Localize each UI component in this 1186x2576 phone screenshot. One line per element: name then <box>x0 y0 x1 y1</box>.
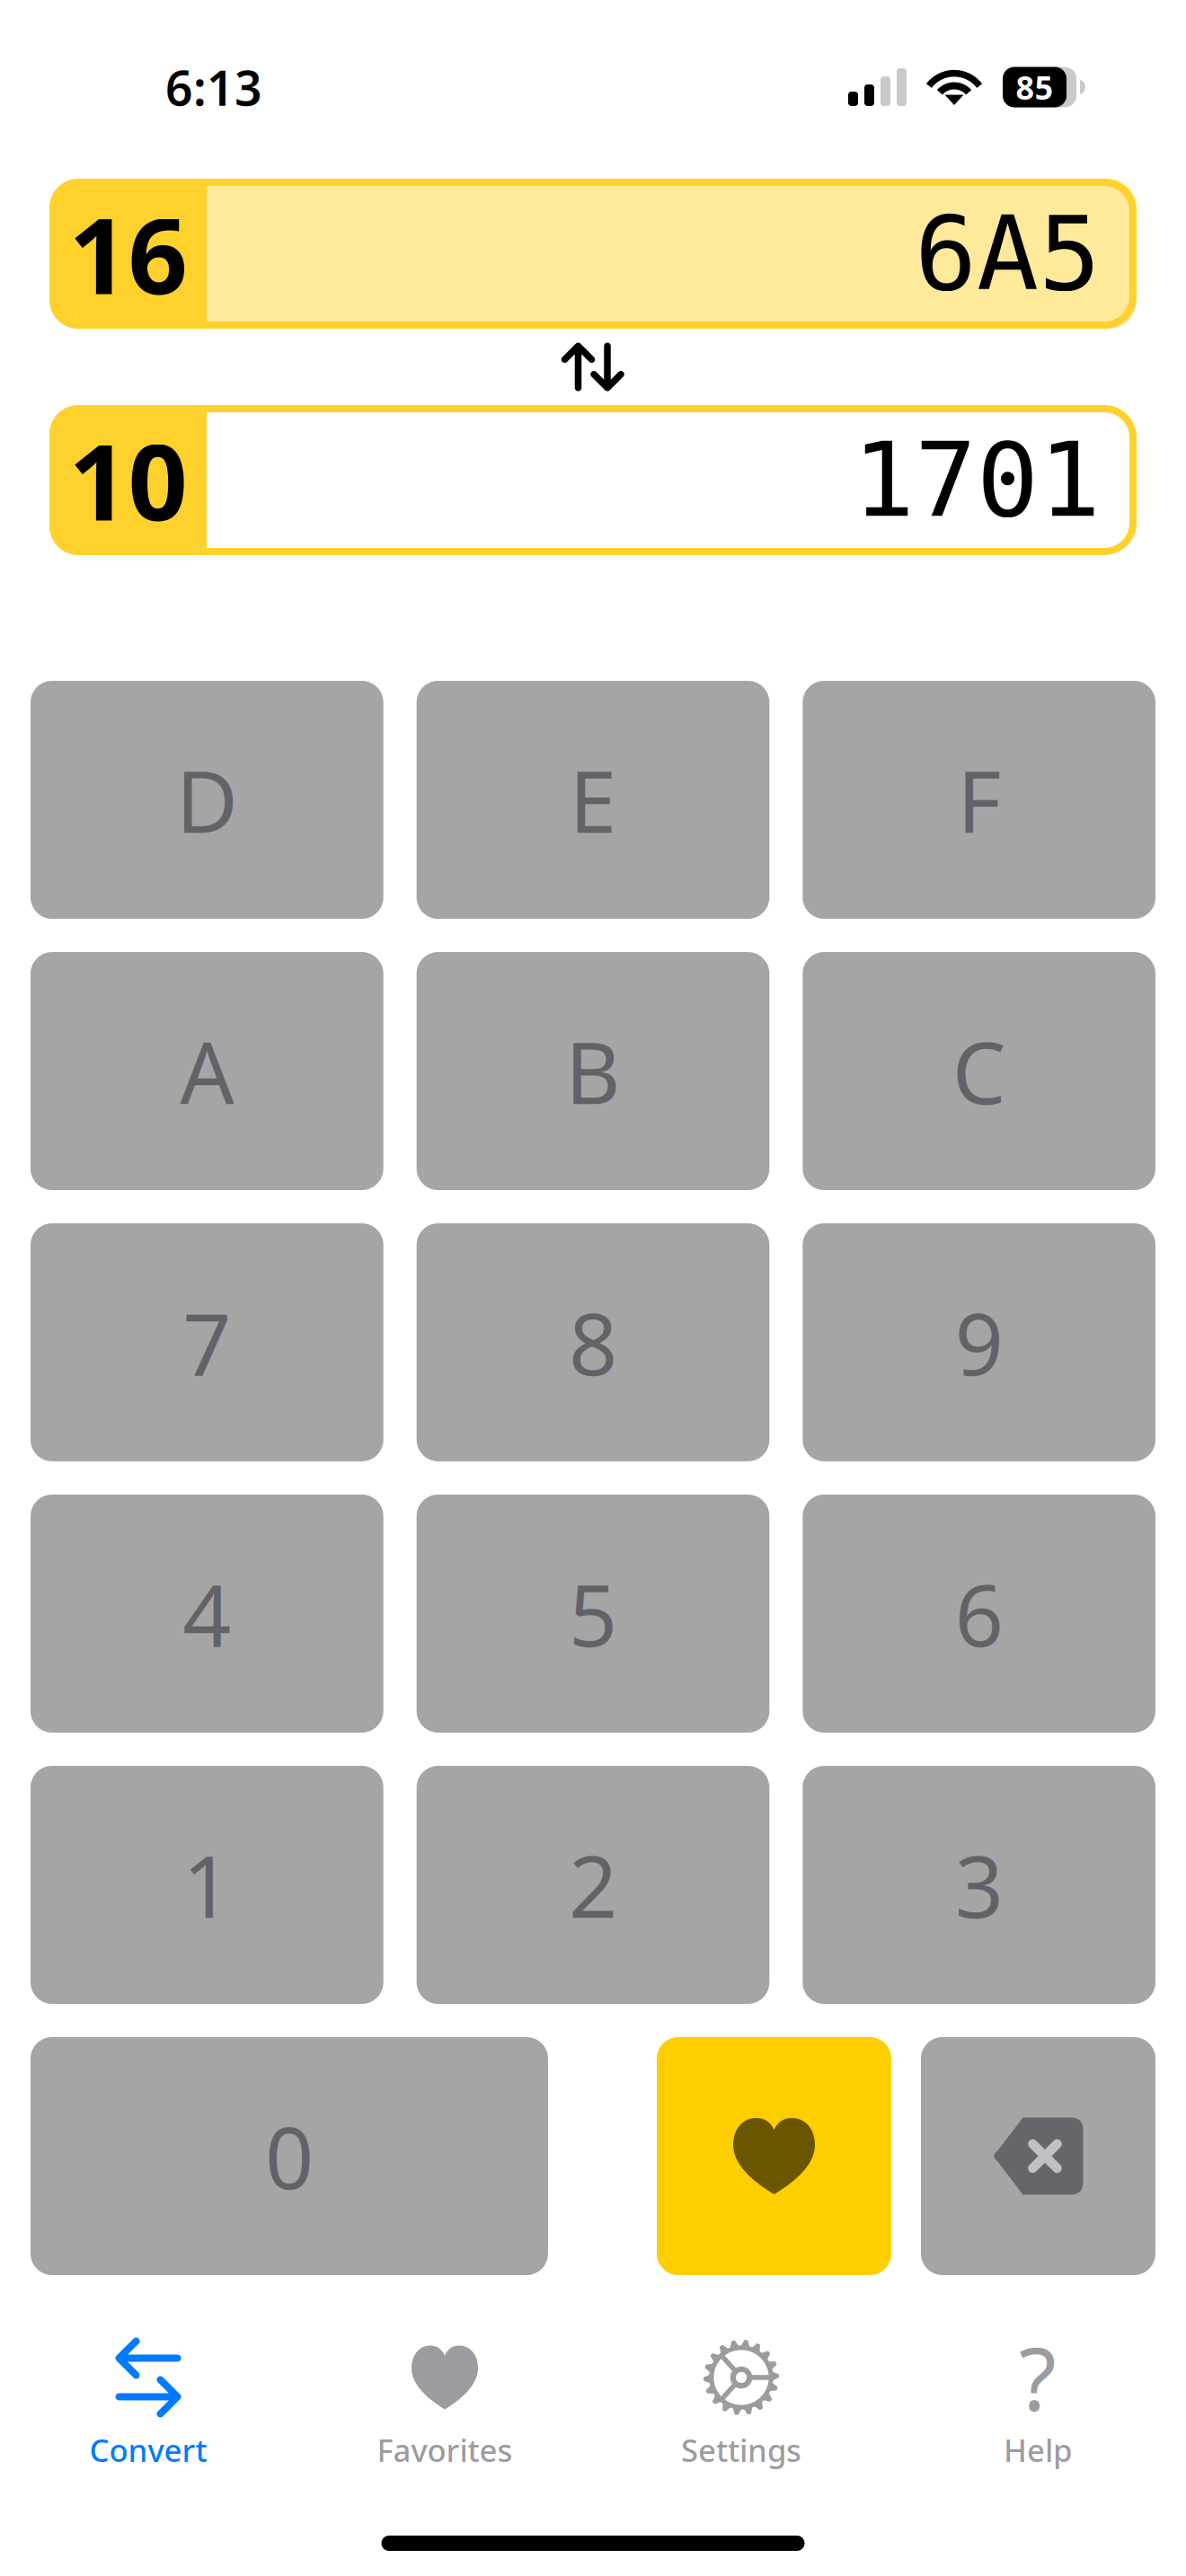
button[interactable]: A <box>31 952 383 1190</box>
staticText: 7 <box>183 1286 231 1399</box>
staticText: 4 <box>183 1557 231 1670</box>
button[interactable]: 1 <box>31 1766 383 2004</box>
button[interactable]: 7 <box>31 1223 383 1461</box>
staticText: D <box>176 743 238 856</box>
staticText: 6A5 <box>915 195 1101 312</box>
staticText: 8 <box>569 1286 617 1399</box>
staticText: 1 <box>183 1828 231 1941</box>
button[interactable]: 10 <box>49 405 1137 555</box>
staticText: 85 <box>1016 66 1053 109</box>
button[interactable]: 16 <box>49 179 1137 329</box>
button[interactable]: ? <box>889 2340 1186 2468</box>
button[interactable]: 8 <box>417 1223 769 1461</box>
button[interactable]: C <box>803 952 1155 1190</box>
button[interactable]: 9 <box>803 1223 1155 1461</box>
button[interactable]: E <box>417 681 769 919</box>
staticText: 0 <box>265 2100 314 2213</box>
staticText: C <box>952 1015 1006 1127</box>
button[interactable]: Convert <box>0 2340 296 2468</box>
staticText: 9 <box>955 1286 1003 1399</box>
button[interactable]: 6 <box>803 1495 1155 1733</box>
staticText: 6 <box>955 1557 1003 1670</box>
staticText: Favorites <box>377 2429 513 2470</box>
button[interactable]: Swap bases <box>49 329 1137 405</box>
button[interactable]: Favourite <box>657 2037 891 2275</box>
staticText: E <box>569 743 617 856</box>
button[interactable]: 4 <box>31 1495 383 1733</box>
button[interactable]: 0 <box>31 2037 548 2275</box>
staticText: 6:13 <box>165 55 262 119</box>
staticText: 16 <box>69 185 187 323</box>
staticText: 10 <box>69 411 187 549</box>
staticText: 3 <box>955 1828 1003 1941</box>
button[interactable]: D <box>31 681 383 919</box>
button[interactable]: 2 <box>417 1766 769 2004</box>
button[interactable]: F <box>803 681 1155 919</box>
staticText: F <box>957 743 1001 856</box>
button[interactable]: B <box>417 952 769 1190</box>
button[interactable]: Favorites <box>296 2340 593 2468</box>
staticText: A <box>180 1015 234 1127</box>
staticText: Convert <box>89 2429 207 2470</box>
button[interactable]: 5 <box>417 1495 769 1733</box>
staticText: 5 <box>569 1557 617 1670</box>
staticText: ? <box>1019 2320 1057 2435</box>
staticText: Settings <box>681 2429 801 2470</box>
button[interactable]: Settings <box>593 2340 889 2468</box>
button[interactable]: Delete <box>921 2037 1155 2275</box>
button[interactable]: 3 <box>803 1766 1155 2004</box>
staticText: B <box>565 1015 621 1127</box>
staticText: 1701 <box>853 422 1101 538</box>
staticText: 2 <box>569 1828 617 1941</box>
staticText: Help <box>1004 2429 1072 2470</box>
